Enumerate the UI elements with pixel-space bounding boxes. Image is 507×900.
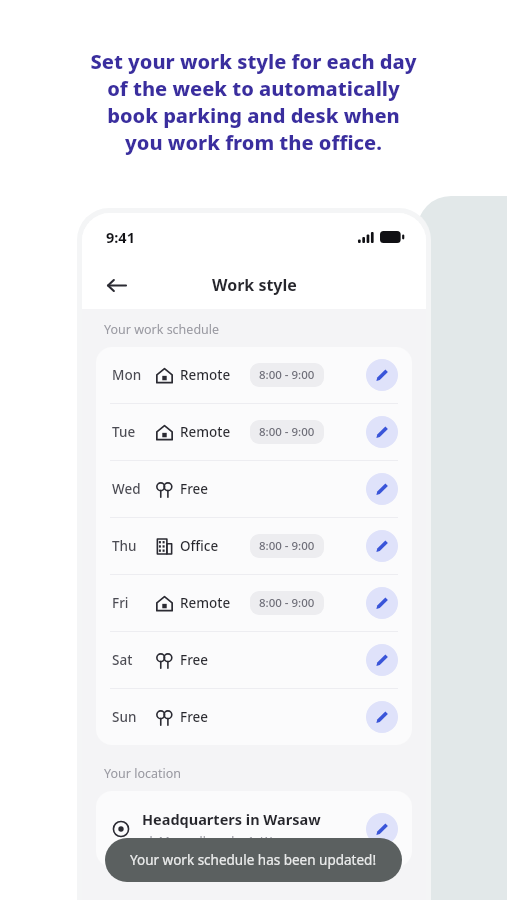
button[interactable]: Your work schedule has been updated! [105, 838, 402, 882]
button[interactable]: Thu [96, 518, 412, 574]
button[interactable]: Edit [366, 587, 398, 619]
button[interactable]: Tue [96, 404, 412, 460]
button[interactable]: Wed [96, 461, 412, 517]
button[interactable]: Edit [366, 359, 398, 391]
button[interactable]: Edit [366, 813, 398, 845]
staticText: Wed [112, 480, 146, 498]
staticText: ul. Marszalkowska 1, Warsaw [142, 833, 306, 849]
button[interactable]: Sat [96, 632, 412, 688]
staticText: Tue [112, 423, 146, 441]
staticText: Sun [112, 708, 146, 726]
staticText: 9:41 [106, 227, 135, 247]
button[interactable]: Edit [366, 530, 398, 562]
button[interactable]: Edit [366, 701, 398, 733]
staticText: 8:00 - 9:00 [259, 367, 315, 383]
staticText: 8:00 - 9:00 [259, 538, 315, 554]
button[interactable]: Headquarters in Warsaw [96, 791, 412, 867]
staticText: Free [180, 651, 244, 669]
staticText: 8:00 - 9:00 [259, 424, 315, 440]
staticText: Sat [112, 651, 146, 669]
staticText: Headquarters in Warsaw [142, 809, 321, 829]
staticText: Work style [212, 274, 297, 296]
button[interactable]: Edit [366, 644, 398, 676]
staticText: 8:00 - 9:00 [259, 595, 315, 611]
staticText: Your work schedule has been updated! [130, 851, 377, 869]
button[interactable]: Mon [96, 347, 412, 403]
staticText: Your location [104, 765, 181, 782]
staticText: Remote [180, 423, 244, 441]
staticText: Your work schedule [104, 321, 220, 338]
button[interactable]: Edit [366, 416, 398, 448]
staticText: Thu [112, 537, 146, 555]
staticText: Remote [180, 594, 244, 612]
staticText: Remote [180, 366, 244, 384]
button[interactable]: Fri [96, 575, 412, 631]
staticText: Free [180, 480, 244, 498]
staticText: Office [180, 537, 244, 555]
button[interactable]: Back [98, 267, 134, 303]
button[interactable]: Edit [366, 473, 398, 505]
staticText: Mon [112, 366, 146, 384]
staticText: Set your work style for each day of the … [90, 48, 417, 156]
staticText: Free [180, 708, 244, 726]
staticText: Fri [112, 594, 146, 612]
button[interactable]: Sun [96, 689, 412, 745]
